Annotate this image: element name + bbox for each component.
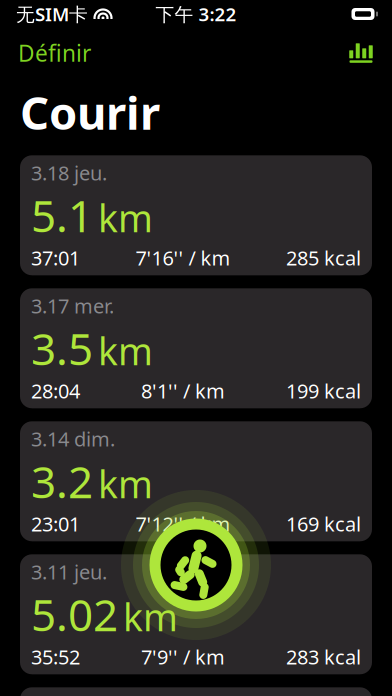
staticText: Définir xyxy=(18,38,91,68)
button[interactable]: Statistiques xyxy=(348,38,374,68)
staticText: 23:01 xyxy=(31,510,80,537)
staticText: 下午 3:22 xyxy=(155,2,236,26)
staticText: Courir xyxy=(20,82,160,142)
staticText: 3.17 mer. xyxy=(31,292,114,319)
staticText: 8'1'' / km xyxy=(141,377,225,404)
button[interactable]: 3.11 jeu. xyxy=(20,554,372,674)
staticText: km xyxy=(98,193,153,243)
staticText: km xyxy=(123,592,178,642)
staticText: 3.5 xyxy=(31,319,93,377)
button[interactable]: 3.18 jeu. xyxy=(20,155,372,275)
staticText: 37:01 xyxy=(31,244,80,271)
staticText: km xyxy=(98,459,153,509)
staticText: km xyxy=(98,326,153,376)
staticText: 285 kcal xyxy=(286,244,361,271)
staticText: 5.1 xyxy=(31,186,93,244)
staticText: 199 kcal xyxy=(286,377,361,404)
staticText: 169 kcal xyxy=(286,510,361,537)
button[interactable]: 3.8 lun. xyxy=(20,687,372,696)
button[interactable]: Démarrer une course xyxy=(121,490,271,640)
staticText: 7'12'' / km xyxy=(135,510,230,537)
staticText: 3.14 dim. xyxy=(31,425,115,452)
staticText: 无SIM卡 xyxy=(16,2,88,26)
staticText: 28:04 xyxy=(31,377,80,404)
staticText: 7'9'' / km xyxy=(141,643,225,670)
staticText: 3.2 xyxy=(31,452,93,510)
button[interactable]: 3.17 mer. xyxy=(20,288,372,408)
staticText: 3.18 jeu. xyxy=(31,159,107,186)
staticText: 35:52 xyxy=(31,643,80,670)
staticText: 5.02 xyxy=(31,585,118,643)
staticText: 7'16'' / km xyxy=(135,244,230,271)
staticText: 3.11 jeu. xyxy=(31,558,107,585)
button[interactable]: Définir xyxy=(18,34,91,72)
button[interactable]: 3.14 dim. xyxy=(20,421,372,541)
staticText: 283 kcal xyxy=(286,643,361,670)
